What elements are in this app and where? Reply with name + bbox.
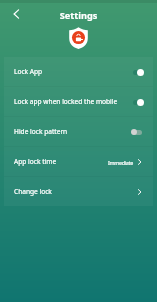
staticText: App lock time xyxy=(14,157,108,166)
button[interactable]: Lock App xyxy=(4,57,153,86)
button[interactable]: Toggle xyxy=(131,128,142,136)
button[interactable]: Toggle xyxy=(133,98,144,106)
staticText: Lock App xyxy=(14,67,133,76)
staticText: Lock app when locked the mobile xyxy=(14,97,133,106)
button[interactable]: App lock time xyxy=(4,147,153,176)
staticText: Immediate xyxy=(108,159,133,166)
button[interactable]: Change lock xyxy=(4,177,153,206)
button[interactable]: Hide lock pattern xyxy=(4,117,153,146)
staticText: Change lock xyxy=(14,187,136,196)
staticText: Hide lock pattern xyxy=(14,127,133,136)
button[interactable]: Lock app when locked the mobile xyxy=(4,87,153,116)
staticText: Settings xyxy=(0,9,157,22)
button[interactable]: Toggle xyxy=(133,68,144,76)
button[interactable]: Back xyxy=(8,6,24,22)
